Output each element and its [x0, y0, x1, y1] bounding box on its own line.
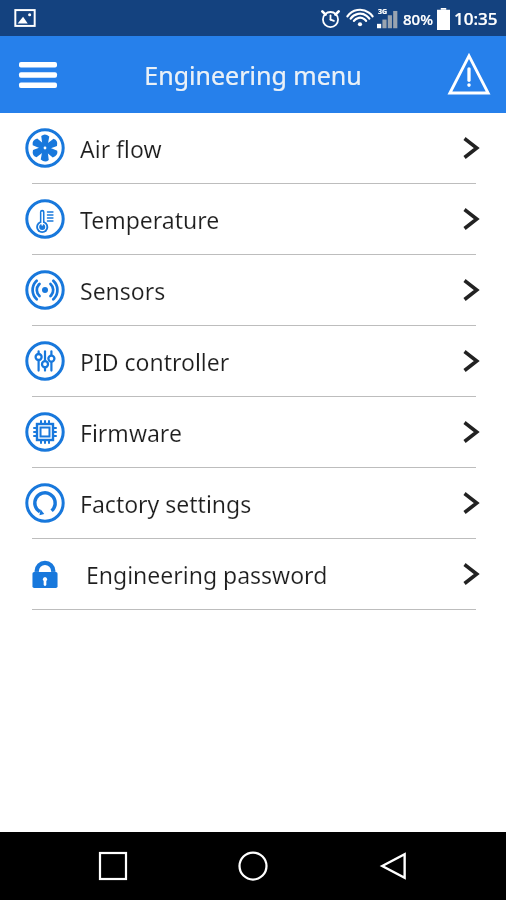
staticText: 10:35 [454, 7, 498, 30]
staticText: Air flow [80, 133, 162, 164]
button[interactable]: Home [225, 838, 281, 894]
staticText: Temperature [80, 204, 220, 235]
button[interactable]: Engineering password [0, 539, 506, 609]
button[interactable]: Firmware [0, 397, 506, 467]
staticText: PID controller [80, 346, 230, 377]
button[interactable]: Recent apps [85, 838, 141, 894]
button[interactable]: Factory settings [0, 468, 506, 538]
staticText: Engineering password [86, 559, 328, 590]
staticText: Firmware [80, 417, 182, 448]
button[interactable]: Open navigation menu [10, 47, 66, 103]
button[interactable]: Warnings [440, 46, 498, 104]
button[interactable]: Back [366, 838, 422, 894]
staticText: Sensors [80, 275, 166, 306]
button[interactable]: Sensors [0, 255, 506, 325]
button[interactable]: PID controller [0, 326, 506, 396]
staticText: 80% [403, 9, 433, 29]
button[interactable]: Air flow [0, 113, 506, 183]
staticText: Factory settings [80, 488, 252, 519]
staticText: Engineering menu [144, 58, 362, 92]
staticText: 3G [378, 7, 388, 17]
button[interactable]: Temperature [0, 184, 506, 254]
